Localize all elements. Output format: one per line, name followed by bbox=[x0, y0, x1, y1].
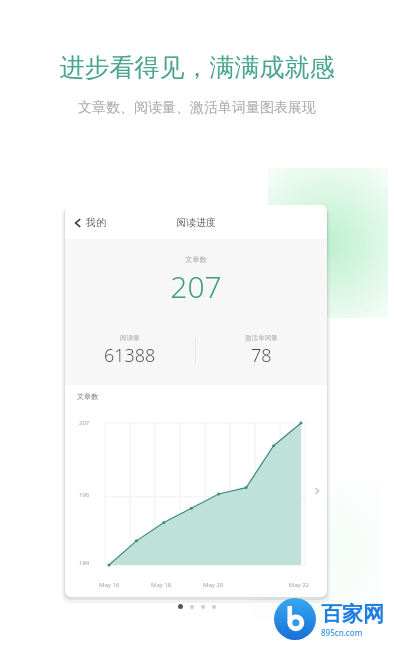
staticText: 进步看得见，满满成就感 bbox=[0, 52, 394, 83]
staticText: 百家网 bbox=[321, 601, 384, 627]
button[interactable]: 阅读量 bbox=[65, 334, 195, 368]
staticText: 61388 bbox=[104, 343, 156, 368]
button[interactable] bbox=[201, 605, 205, 609]
button[interactable] bbox=[190, 605, 194, 609]
button[interactable] bbox=[178, 604, 183, 609]
staticText: 78 bbox=[251, 343, 272, 368]
staticText: 文章数 bbox=[77, 392, 98, 401]
button[interactable] bbox=[65, 407, 327, 593]
staticText: May 16 bbox=[99, 581, 151, 589]
staticText: 207 bbox=[79, 419, 90, 427]
staticText: 文章数 bbox=[65, 255, 327, 264]
other: Back bbox=[73, 218, 83, 228]
staticText: 196 bbox=[79, 491, 90, 499]
staticText: 阅读进度 bbox=[176, 216, 216, 229]
button[interactable]: 激活单词量 bbox=[196, 334, 327, 368]
staticText: 895cn.com bbox=[321, 627, 363, 638]
staticText: 我的 bbox=[86, 216, 106, 229]
button[interactable] bbox=[212, 605, 216, 609]
staticText: 184 bbox=[79, 559, 90, 567]
staticText: May 20 bbox=[203, 581, 256, 589]
staticText: 阅读量 bbox=[120, 334, 140, 342]
staticText: May 18 bbox=[151, 581, 203, 589]
staticText: May 22 bbox=[256, 581, 309, 589]
staticText: 207 bbox=[65, 266, 327, 307]
staticText: 文章数、阅读量、激活单词量图表展现 bbox=[0, 99, 394, 117]
button[interactable]: Back bbox=[73, 216, 106, 229]
staticText: 激活单词量 bbox=[245, 334, 278, 342]
button[interactable]: Next chart bbox=[313, 487, 321, 495]
